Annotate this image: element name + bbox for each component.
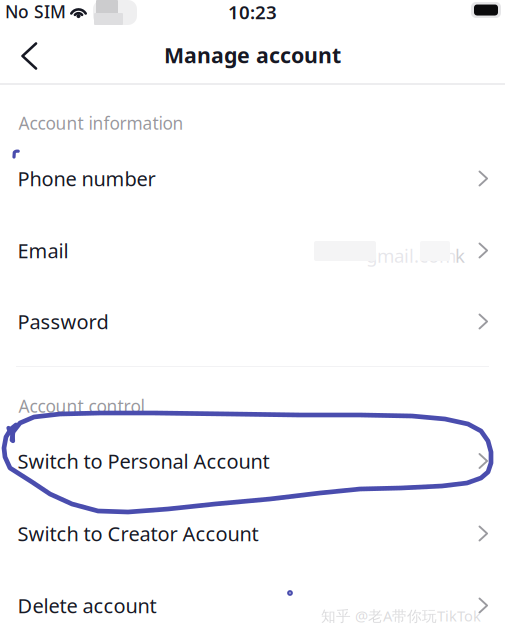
staticText: Password bbox=[17, 308, 108, 335]
staticText: Switch to Personal Account bbox=[17, 448, 269, 474]
staticText: Manage account bbox=[164, 41, 341, 69]
button[interactable]: Delete account bbox=[0, 576, 505, 634]
staticText: Account control bbox=[18, 394, 144, 417]
staticText: Email bbox=[17, 237, 68, 264]
staticText: k bbox=[455, 243, 465, 268]
button[interactable]: Switch to Personal Account bbox=[0, 432, 505, 490]
button[interactable]: Password bbox=[0, 292, 505, 350]
button[interactable]: Back bbox=[2, 31, 58, 81]
staticText: Account information bbox=[18, 111, 183, 134]
button[interactable]: Switch to Creator Account bbox=[0, 504, 505, 562]
staticText: No SIM bbox=[5, 0, 66, 23]
button[interactable]: Phone number bbox=[0, 149, 505, 207]
staticText: Phone number bbox=[17, 165, 155, 192]
staticText: 10:23 bbox=[228, 0, 277, 24]
staticText: Delete account bbox=[17, 592, 156, 619]
button[interactable]: Email bbox=[0, 221, 505, 279]
staticText: 知乎 @老A带你玩TikTok bbox=[321, 606, 481, 625]
staticText: gmail.com bbox=[366, 243, 456, 268]
staticText: Switch to Creator Account bbox=[17, 520, 258, 547]
